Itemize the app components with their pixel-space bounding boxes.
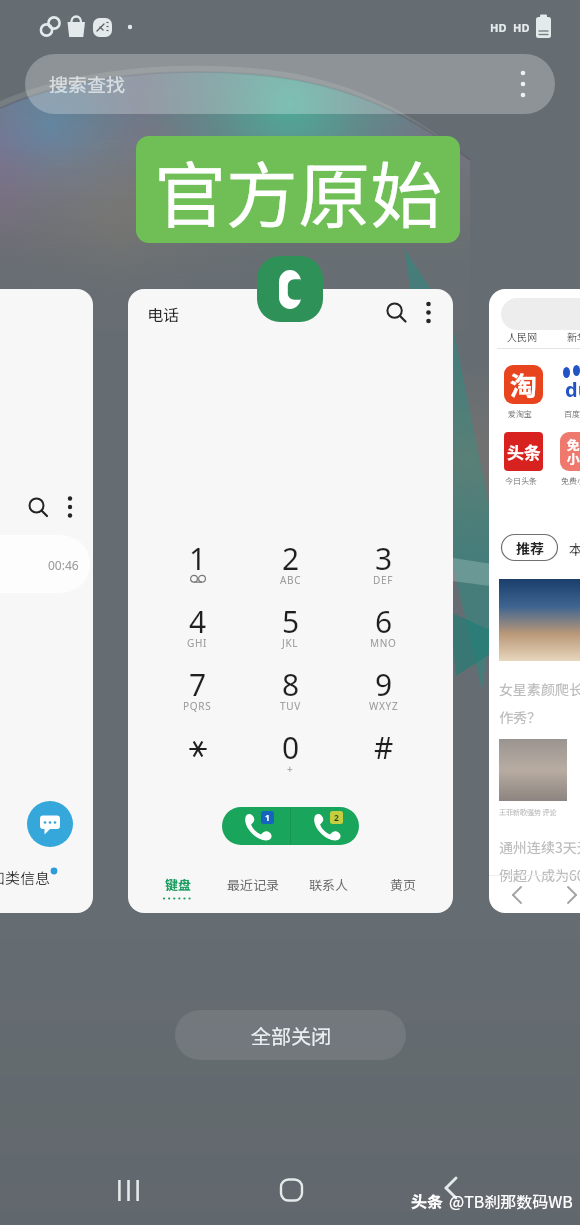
staticText: 例超八成为60岁 xyxy=(499,865,580,885)
staticText: 头条 xyxy=(411,1189,444,1212)
staticText: 人民网 xyxy=(507,329,537,343)
button[interactable]: Dial 8 xyxy=(244,653,337,716)
button[interactable]: Dial 7 xyxy=(151,653,244,716)
staticText: # xyxy=(374,727,394,768)
staticText: 搜索查找 xyxy=(49,70,126,98)
button[interactable]: Dial # xyxy=(337,716,430,779)
staticText: 1 xyxy=(265,812,270,824)
button[interactable]: 黄页 xyxy=(366,875,441,913)
staticText: HD xyxy=(490,20,507,35)
staticText: PQRS xyxy=(183,699,212,713)
button[interactable]: Back xyxy=(504,881,532,909)
button[interactable]: Back xyxy=(431,1168,471,1208)
staticText: 1 xyxy=(189,538,207,579)
staticText: 8 xyxy=(282,664,300,705)
staticText: 王菲新歌强势 评论 xyxy=(499,807,557,817)
staticText: 免费 小说 xyxy=(566,435,580,468)
staticText: @TB刹那数码WB xyxy=(449,1189,573,1212)
staticText: 头条 xyxy=(507,439,541,464)
staticText: 9 xyxy=(375,664,393,705)
button[interactable]: Dial 1 xyxy=(151,527,244,590)
button[interactable]: 全部关闭 xyxy=(175,1010,406,1060)
button[interactable]: 人民网 xyxy=(489,289,580,913)
button[interactable]: New conversation xyxy=(27,801,73,847)
staticText: TUV xyxy=(280,699,301,713)
staticText: 2 xyxy=(282,538,300,579)
staticText: GHI xyxy=(187,636,208,650)
staticText: 4 xyxy=(189,601,207,642)
staticText: MNO xyxy=(370,636,397,650)
button[interactable]: Dial 2 xyxy=(244,527,337,590)
staticText: 官方原始 xyxy=(154,138,443,242)
staticText: WXYZ xyxy=(369,699,399,713)
staticText: du xyxy=(565,376,580,403)
staticText: 7 xyxy=(189,664,207,705)
staticText: ABC xyxy=(280,573,302,587)
staticText: 00:46 xyxy=(48,557,79,573)
staticText: 推荐 xyxy=(516,538,544,558)
button[interactable]: Dial 6 xyxy=(337,590,430,653)
button[interactable]: Dial * xyxy=(151,716,244,779)
button[interactable]: More options xyxy=(413,297,443,327)
button[interactable]: Dial 3 xyxy=(337,527,430,590)
staticText: 作秀？ xyxy=(499,707,541,727)
button[interactable]: More options xyxy=(511,72,535,96)
button[interactable]: 电话 xyxy=(128,289,453,913)
button[interactable]: More options xyxy=(57,494,83,520)
button[interactable]: Dial 4 xyxy=(151,590,244,653)
staticText: 女星素颜爬长城 xyxy=(499,679,580,699)
staticText: HD xyxy=(513,20,530,35)
button[interactable]: 搜索查找 xyxy=(25,54,555,114)
button[interactable]: Recents xyxy=(108,1170,149,1211)
staticText: 最近记录 xyxy=(227,875,280,894)
staticText: 5 xyxy=(282,601,300,642)
button[interactable]: 联系人 xyxy=(291,875,366,913)
staticText: 淘 xyxy=(510,365,537,404)
staticText: 免费小说 xyxy=(561,475,580,487)
staticText: 键盘 xyxy=(165,875,192,894)
staticText: 本地 xyxy=(569,539,580,559)
button[interactable]: Search xyxy=(381,297,411,327)
staticText: + xyxy=(287,762,294,776)
staticText: 新华社 xyxy=(567,329,580,343)
staticText: 爱淘宝 xyxy=(508,408,532,420)
staticText: 全部关闭 xyxy=(251,1021,331,1050)
button[interactable]: Home xyxy=(271,1170,312,1211)
button[interactable]: 最近记录 xyxy=(216,875,291,913)
staticText: 通州连续3天无新 xyxy=(499,837,580,857)
staticText: DEF xyxy=(373,573,394,587)
staticText: 知类信息 xyxy=(0,867,51,889)
button[interactable]: Dial 9 xyxy=(337,653,430,716)
button[interactable]: Call with SIM 2 xyxy=(291,807,359,845)
button[interactable]: Forward xyxy=(557,881,580,909)
staticText: 0 xyxy=(282,727,300,768)
button[interactable]: Call with SIM 1 xyxy=(222,807,290,845)
staticText: 百度搜 xyxy=(564,408,580,420)
button[interactable]: Search xyxy=(0,289,93,913)
staticText: 2 xyxy=(334,812,339,824)
button[interactable]: Dial 5 xyxy=(244,590,337,653)
staticText: JKL xyxy=(282,636,299,650)
staticText: 电话 xyxy=(147,302,180,325)
staticText: 联系人 xyxy=(309,875,349,894)
button[interactable]: Search xyxy=(25,494,51,520)
staticText: 3 xyxy=(375,538,393,579)
button[interactable]: Dial 0 xyxy=(244,716,337,779)
staticText: 6 xyxy=(375,601,393,642)
staticText: 今日头条 xyxy=(505,475,537,487)
button[interactable]: 键盘 xyxy=(140,875,216,913)
staticText: 黄页 xyxy=(390,875,417,894)
